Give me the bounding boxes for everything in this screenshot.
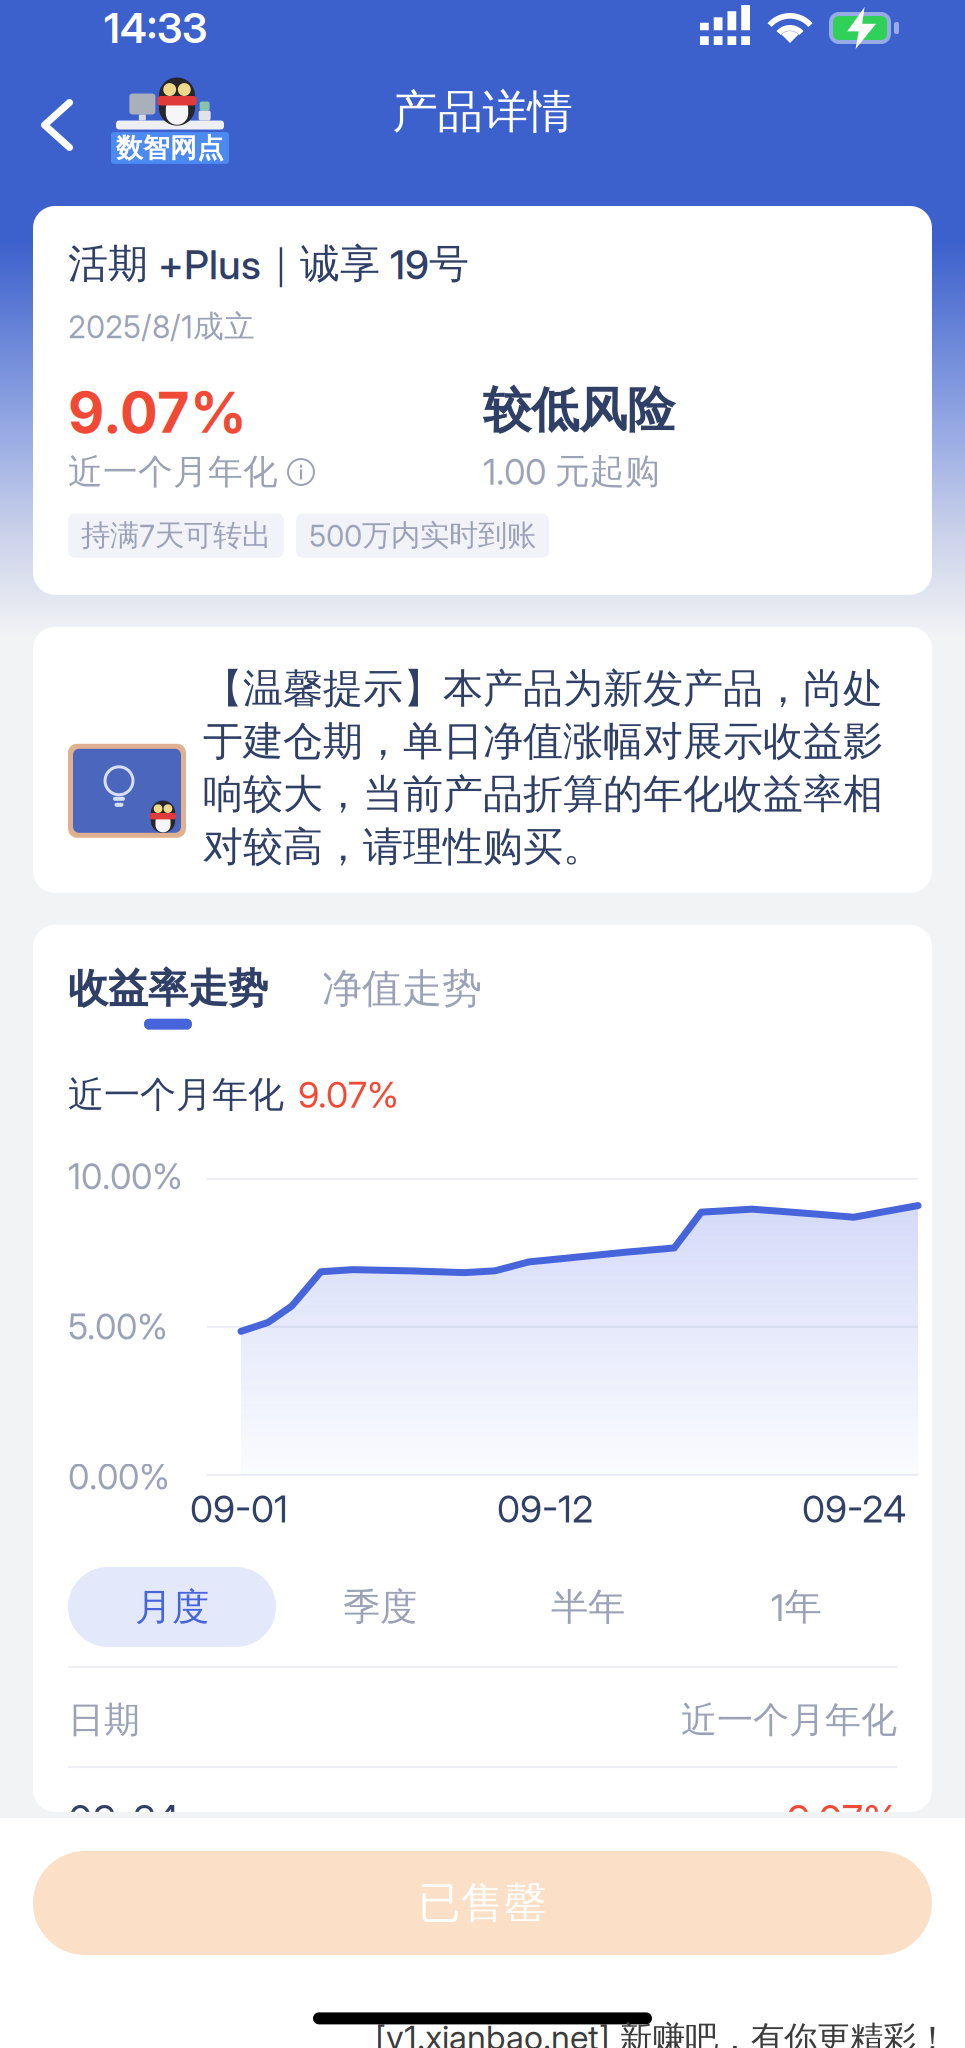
staticText: 数智网点 — [116, 136, 224, 160]
button[interactable]: 1年 — [692, 1567, 900, 1647]
staticText: 净值走势 — [322, 971, 482, 1007]
staticText: 14:33 — [104, 10, 207, 46]
staticText: 500万内实时到账 — [309, 522, 536, 549]
staticText: 09-12 — [497, 1493, 593, 1525]
staticText: 近一个月年化 — [68, 456, 278, 487]
staticText: 【温馨提示】本产品为新发产品，尚处于建仓期，单日净值涨幅对展示收益影响较大，当前… — [203, 671, 883, 865]
staticText: 产品详情 — [392, 92, 572, 132]
staticText: 9.07% — [68, 388, 247, 436]
staticText: 1.00 元起购 — [483, 456, 660, 487]
staticText: 活期 +Plus｜诚享 19号 — [68, 246, 469, 282]
staticText: 09-01 — [190, 1493, 288, 1525]
staticText: 1年 — [770, 1590, 821, 1624]
staticText: [v1.xianbao.net] 新赚吧，有你更精彩！ — [375, 2023, 949, 2048]
staticText: 季度 — [343, 1590, 417, 1624]
button[interactable]: 返回 — [22, 66, 92, 158]
staticText: 09-24 — [68, 1802, 180, 1836]
staticText: 0.00% — [68, 1462, 170, 1492]
button[interactable]: 已售罄 — [33, 1851, 932, 1955]
staticText: 5.00% — [68, 1312, 168, 1342]
staticText: 2025/8/1成立 — [68, 313, 255, 340]
button[interactable]: 半年 — [484, 1567, 692, 1647]
staticText: 09-24 — [802, 1493, 906, 1525]
staticText: 月度 — [135, 1590, 209, 1624]
staticText: 已售罄 — [418, 1884, 547, 1922]
staticText: 日期 — [68, 1704, 140, 1736]
staticText: 9.07% — [298, 1079, 399, 1110]
button[interactable]: 月度 — [68, 1567, 276, 1647]
staticText: 9.07% — [787, 1802, 897, 1836]
staticText: 近一个月年化 — [681, 1704, 897, 1736]
staticText: 10.00% — [68, 1162, 183, 1192]
button[interactable]: 季度 — [276, 1567, 484, 1647]
staticText: 收益率走势 — [68, 971, 268, 1007]
staticText: 持满7天可转出 — [81, 522, 271, 549]
button[interactable]: 净值走势 — [268, 971, 482, 1007]
staticText: 较低风险 — [483, 389, 675, 432]
staticText: 近一个月年化 — [68, 1079, 284, 1111]
staticText: 半年 — [551, 1590, 625, 1624]
button[interactable]: 收益率走势 — [68, 971, 268, 1030]
